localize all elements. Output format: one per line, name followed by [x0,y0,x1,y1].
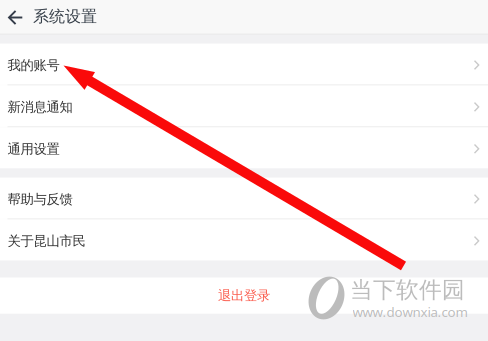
button[interactable]: Back [0,0,30,34]
button[interactable]: 帮助与反馈 [0,178,488,218]
button[interactable]: 关于昆山市民 [0,219,488,260]
staticText: 通用设置 [7,141,59,157]
staticText: 系统设置 [33,6,97,26]
staticText: 我的账号 [7,57,59,73]
staticText: 新消息通知 [7,99,72,115]
button[interactable]: 新消息通知 [0,85,488,126]
staticText: 关于昆山市民 [7,233,85,249]
button[interactable]: 退出登录 [0,277,488,314]
staticText: www.downxia.com [352,303,467,321]
staticText: 当下软件园 [350,276,465,304]
button[interactable]: 通用设置 [0,127,488,168]
staticText: 退出登录 [218,287,270,304]
staticText: 帮助与反馈 [7,191,72,207]
button[interactable]: 我的账号 [0,44,488,84]
